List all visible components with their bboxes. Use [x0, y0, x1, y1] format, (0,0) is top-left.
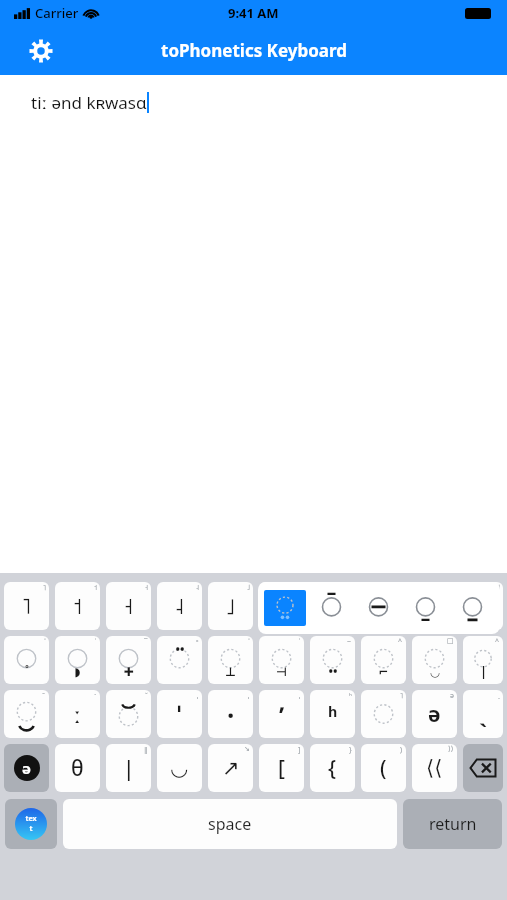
button[interactable]: ring tone: [361, 690, 406, 738]
staticText: ə: [428, 700, 441, 729]
button[interactable]: tone 10: [463, 582, 503, 630]
button[interactable]: tone 4: [157, 582, 202, 630]
button[interactable]: schwa: [412, 690, 457, 738]
staticText: ˥: [43, 583, 46, 593]
staticText: ••: [328, 663, 338, 679]
staticText: ˩: [479, 592, 488, 621]
button[interactable]: variant 5: [451, 590, 494, 626]
staticText: ˨: [175, 592, 184, 621]
button[interactable]: diacritic a: [4, 690, 49, 738]
button[interactable]: key (: [361, 744, 406, 792]
button[interactable]: Shift: [4, 744, 49, 792]
button[interactable]: diacritic 9: [412, 636, 457, 684]
staticText: ): [400, 745, 403, 755]
button[interactable]: h: [310, 690, 355, 738]
button[interactable]: tone 8: [361, 582, 406, 630]
button[interactable]: variant 4: [404, 590, 447, 626]
button[interactable]: apostrophe: [259, 690, 304, 738]
staticText: ˨: [196, 583, 199, 593]
button[interactable]: diacritic 8: [361, 636, 406, 684]
staticText: tiː ənd kʀwasɑ: [31, 91, 147, 114]
button[interactable]: Backspace: [463, 744, 503, 792]
staticText: ◡: [430, 665, 440, 679]
staticText: }: [349, 745, 352, 755]
button[interactable]: diacritic 2: [55, 636, 100, 684]
staticText: ˩: [247, 583, 250, 593]
staticText: ˦: [73, 592, 82, 621]
button[interactable]: tone 2: [55, 582, 100, 630]
staticText: space: [208, 813, 252, 835]
staticText: ə: [22, 758, 31, 778]
staticText: ˥: [277, 592, 286, 621]
staticText: ə: [450, 691, 454, 701]
button[interactable]: diacritic 10: [463, 636, 503, 684]
button[interactable]: tone 7: [310, 582, 355, 630]
staticText: [: [278, 754, 285, 783]
staticText: ˦: [94, 583, 97, 593]
staticText: ⊣: [276, 665, 287, 679]
staticText: ˧: [145, 583, 148, 593]
staticText: ↗: [222, 756, 240, 780]
staticText: |: [480, 663, 487, 679]
button[interactable]: Settings: [23, 33, 59, 69]
button[interactable]: key {: [310, 744, 355, 792]
staticText: ˎ: [479, 699, 488, 729]
staticText: ◡: [170, 756, 189, 780]
button[interactable]: tone 9: [412, 582, 457, 630]
button[interactable]: key ◡: [157, 744, 202, 792]
button[interactable]: variant 2: [310, 590, 353, 626]
button[interactable]: diacritic 7: [310, 636, 355, 684]
staticText: ˜: [42, 691, 46, 701]
button[interactable]: tone 1: [4, 582, 49, 630]
button[interactable]: diacritic 6: [259, 636, 304, 684]
staticText: ^: [495, 637, 500, 647]
button[interactable]: space: [63, 799, 397, 849]
button[interactable]: variant 1: [264, 590, 306, 626]
staticText: ˥: [400, 691, 403, 701]
button[interactable]: diacritic 3: [106, 636, 151, 684]
button[interactable]: dot: [208, 690, 253, 738]
staticText: ˈ: [177, 698, 182, 731]
button[interactable]: key ↗: [208, 744, 253, 792]
staticText: ˨: [430, 592, 439, 621]
button[interactable]: key ⟨⟨: [412, 744, 457, 792]
button[interactable]: Switch keyboard: [5, 799, 57, 849]
button[interactable]: tone 6: [259, 582, 304, 630]
staticText: ‖: [144, 745, 148, 755]
staticText: ʾ: [299, 637, 301, 647]
staticText: ʰ: [349, 691, 352, 701]
staticText: ˑ: [94, 691, 97, 701]
staticText: |: [123, 754, 135, 783]
button[interactable]: colon: [55, 690, 100, 738]
staticText: ʿ: [95, 637, 97, 647]
staticText: Carrier: [35, 4, 79, 22]
staticText: ˌ: [197, 691, 199, 701]
staticText: 9:41 AM: [228, 4, 279, 22]
staticText: ˧: [124, 592, 133, 621]
button[interactable]: tone 3: [106, 582, 151, 630]
button[interactable]: vertical line: [157, 690, 202, 738]
button[interactable]: key θ: [55, 744, 100, 792]
staticText: ˘: [145, 691, 148, 701]
button[interactable]: variant 3: [357, 590, 400, 626]
staticText: ˧: [379, 592, 388, 621]
button[interactable]: key [: [259, 744, 304, 792]
button[interactable]: hook: [463, 690, 503, 738]
staticText: ˅: [44, 637, 46, 647]
button[interactable]: return: [403, 799, 502, 849]
staticText: ˚: [25, 663, 29, 679]
button[interactable]: diacritic 4: [157, 636, 202, 684]
staticText: (: [380, 754, 387, 783]
button[interactable]: tone 5: [208, 582, 253, 630]
staticText: ⟨⟨: [426, 756, 443, 780]
staticText: ˥: [22, 592, 31, 621]
staticText: ^: [398, 637, 403, 647]
button[interactable]: key |: [106, 744, 151, 792]
button[interactable]: diacritic 5: [208, 636, 253, 684]
staticText: ~: [347, 637, 352, 647]
button[interactable]: diacritic 1: [4, 636, 49, 684]
button[interactable]: breve: [106, 690, 151, 738]
